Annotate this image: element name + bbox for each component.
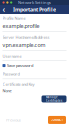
staticText: CONNECT: [50, 118, 63, 122]
staticText: Previous: [6, 117, 21, 123]
button[interactable]: Manage Certificates: [41, 95, 66, 102]
staticText: Server Hostname/Address: [2, 34, 49, 40]
staticText: Profile Name: [2, 15, 25, 21]
staticText: Username: [2, 53, 21, 59]
staticText: Certificate and Key: [2, 82, 34, 87]
button[interactable]: CONNECT: [48, 116, 66, 124]
staticText: Password: [2, 71, 19, 76]
staticText: None: [2, 88, 11, 93]
button[interactable]: Save password: [2, 63, 66, 68]
staticText: Network Settings: [18, 0, 51, 5]
staticText: Important Profile: [13, 6, 56, 13]
staticText: vpn.example.com: [2, 41, 45, 48]
staticText: Save password: [7, 63, 33, 68]
staticText: Manage Certificates: [46, 95, 62, 102]
button[interactable]: Back: [0, 5, 8, 14]
staticText: ‹: [2, 4, 5, 15]
button[interactable]: Previous: [3, 116, 24, 124]
staticText: example.profile: [2, 22, 39, 29]
